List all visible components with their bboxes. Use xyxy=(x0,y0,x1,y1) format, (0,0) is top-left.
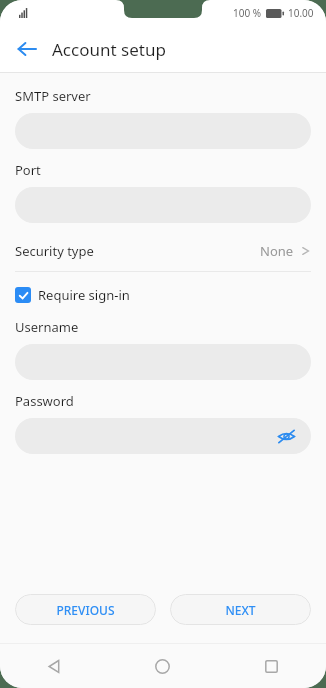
button[interactable]: Back xyxy=(0,644,108,688)
button[interactable]: Security type xyxy=(15,237,311,265)
staticText: Security type xyxy=(15,242,94,260)
staticText: Account setup xyxy=(52,38,166,61)
button[interactable]: Back xyxy=(8,30,46,68)
staticText: PREVIOUS xyxy=(56,602,115,618)
button[interactable]: Require sign-in xyxy=(15,283,130,307)
button[interactable]: Show password xyxy=(15,418,311,454)
button[interactable]: Show password xyxy=(275,425,297,447)
staticText: Username xyxy=(15,318,79,336)
staticText: 100 % xyxy=(233,6,262,20)
button[interactable]: Recent apps xyxy=(217,644,326,688)
staticText: Port xyxy=(15,161,41,179)
button[interactable]: NEXT xyxy=(170,594,311,625)
staticText: Require sign-in xyxy=(38,286,130,304)
staticText: SMTP server xyxy=(15,87,91,105)
button[interactable]: PREVIOUS xyxy=(15,594,156,625)
staticText: None xyxy=(260,242,294,260)
staticText: NEXT xyxy=(225,602,256,618)
button[interactable]: Home xyxy=(108,644,217,688)
staticText: Password xyxy=(15,392,74,410)
staticText: 10.00 xyxy=(288,6,314,20)
